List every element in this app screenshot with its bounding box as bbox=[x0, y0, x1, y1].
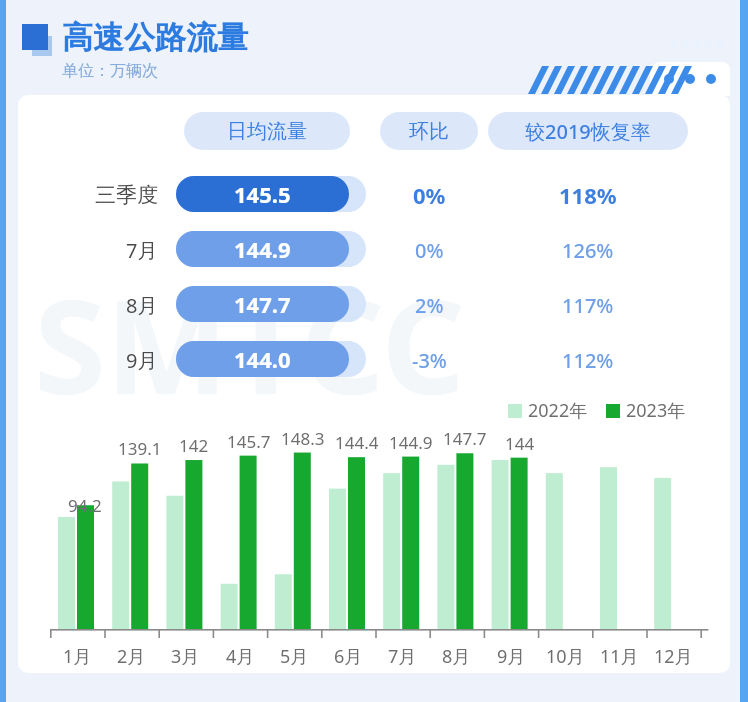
staticText: 112% bbox=[562, 347, 614, 374]
button[interactable]: 11月 bbox=[592, 643, 646, 669]
staticText: 94.2 bbox=[68, 494, 102, 517]
staticText: 147.7 bbox=[443, 427, 487, 450]
staticText: -3% bbox=[412, 347, 447, 374]
staticText: 单位：万辆次 bbox=[62, 61, 158, 81]
staticText: 8月 bbox=[442, 644, 471, 669]
staticText: 144 bbox=[505, 432, 535, 455]
staticText: 144.4 bbox=[335, 431, 379, 454]
staticText: 高速公路流量 bbox=[62, 18, 248, 57]
staticText: 2月 bbox=[117, 644, 146, 669]
staticText: 144.9 bbox=[234, 234, 291, 264]
staticText: 0% bbox=[415, 237, 444, 264]
button[interactable]: 147.7 bbox=[176, 286, 349, 322]
button[interactable]: 2月 bbox=[104, 643, 158, 669]
button[interactable]: 145.5 bbox=[176, 176, 349, 212]
staticText: 118% bbox=[559, 180, 617, 210]
staticText: 145.7 bbox=[227, 430, 271, 453]
staticText: 117% bbox=[562, 292, 614, 319]
staticText: 145.5 bbox=[234, 179, 291, 209]
staticText: 7月 bbox=[388, 644, 417, 669]
staticText: 147.7 bbox=[234, 289, 291, 319]
staticText: 4月 bbox=[226, 644, 255, 669]
staticText: 142 bbox=[179, 434, 209, 457]
staticText: SMTCC bbox=[34, 255, 465, 432]
button[interactable]: 环比 bbox=[380, 112, 478, 150]
button[interactable]: 9月 bbox=[484, 643, 538, 669]
staticText: 3月 bbox=[171, 644, 200, 669]
staticText: 2022年 bbox=[528, 398, 588, 423]
button[interactable]: 144.9 bbox=[176, 231, 349, 267]
staticText: 12月 bbox=[654, 644, 693, 669]
staticText: 9月 bbox=[126, 347, 158, 374]
staticText: 较2019恢复率 bbox=[525, 118, 651, 145]
staticText: 11月 bbox=[600, 644, 639, 669]
button[interactable]: 10月 bbox=[538, 643, 592, 669]
staticText: 144.0 bbox=[234, 344, 291, 374]
staticText: 126% bbox=[562, 237, 614, 264]
button[interactable]: 7月 bbox=[375, 643, 429, 669]
button[interactable]: 144.0 bbox=[176, 341, 349, 377]
staticText: 1月 bbox=[63, 644, 92, 669]
button[interactable]: 6月 bbox=[321, 643, 375, 669]
staticText: 8月 bbox=[126, 292, 158, 319]
staticText: 7月 bbox=[126, 237, 158, 264]
staticText: 环比 bbox=[409, 119, 449, 144]
staticText: 三季度 bbox=[95, 182, 158, 208]
staticText: 9月 bbox=[497, 644, 526, 669]
staticText: 5月 bbox=[280, 644, 309, 669]
button[interactable]: 4月 bbox=[213, 643, 267, 669]
button[interactable]: 较2019恢复率 bbox=[488, 112, 688, 150]
staticText: 10月 bbox=[546, 644, 585, 669]
staticText: 2% bbox=[415, 292, 444, 319]
button[interactable]: 3月 bbox=[158, 643, 212, 669]
staticText: 日均流量 bbox=[227, 119, 307, 144]
button[interactable]: 日均流量 bbox=[184, 112, 350, 150]
button[interactable]: 5月 bbox=[267, 643, 321, 669]
staticText: 144.9 bbox=[389, 431, 433, 454]
button[interactable]: 12月 bbox=[646, 643, 700, 669]
staticText: 0% bbox=[413, 180, 446, 210]
staticText: 139.1 bbox=[118, 437, 162, 460]
button[interactable]: 8月 bbox=[429, 643, 483, 669]
staticText: 148.3 bbox=[281, 427, 325, 450]
staticText: 6月 bbox=[334, 644, 363, 669]
button[interactable]: 1月 bbox=[50, 643, 104, 669]
staticText: 2023年 bbox=[626, 398, 686, 423]
